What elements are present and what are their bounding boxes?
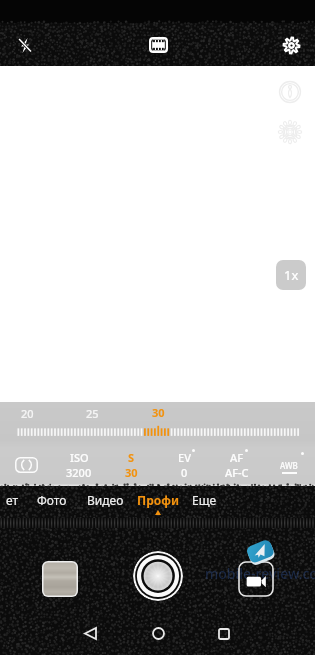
staticText: Видео: [87, 492, 124, 508]
staticText: 3200: [66, 465, 92, 480]
button[interactable]: Home: [125, 612, 191, 655]
staticText: Еще: [192, 492, 217, 508]
button[interactable]: AF: [211, 444, 263, 486]
button[interactable]: Видео: [80, 486, 130, 517]
button[interactable]: Профи: [134, 486, 183, 517]
staticText: ISO: [70, 450, 89, 465]
staticText: Фото: [37, 492, 67, 508]
button[interactable]: ет: [0, 486, 24, 517]
staticText: Профи: [137, 492, 180, 508]
button[interactable]: Фото: [30, 486, 74, 517]
button[interactable]: Metering: [0, 444, 52, 486]
staticText: S: [128, 450, 135, 465]
staticText: 25: [86, 406, 99, 421]
button[interactable]: Switch to video: [238, 561, 274, 597]
staticText: AF: [230, 450, 244, 465]
button[interactable]: Еще: [186, 486, 223, 517]
staticText: EV: [178, 450, 191, 465]
staticText: 20: [21, 406, 34, 421]
button[interactable]: Gallery: [42, 561, 78, 597]
staticText: 30: [152, 405, 165, 420]
button[interactable]: Night mode: [277, 79, 303, 105]
button[interactable]: Shutter: [133, 551, 183, 601]
button[interactable]: Flash off: [8, 29, 40, 61]
staticText: AF-C: [225, 465, 249, 480]
staticText: mobile-review.com: [205, 564, 315, 583]
button[interactable]: Recents: [191, 612, 257, 655]
button[interactable]: Settings: [275, 29, 307, 61]
button[interactable]: 1x: [276, 260, 306, 290]
button[interactable]: Back: [57, 612, 123, 655]
staticText: 1x: [284, 266, 299, 284]
staticText: ет: [6, 492, 19, 508]
button[interactable]: ISO: [53, 444, 105, 486]
button[interactable]: Brightness: [277, 119, 303, 145]
staticText: 0: [181, 465, 188, 480]
button[interactable]: EV: [158, 444, 210, 486]
staticText: 30: [125, 465, 138, 480]
staticText: AWB: [280, 460, 298, 471]
button[interactable]: Filters: [141, 28, 175, 62]
button[interactable]: White balance: [263, 444, 315, 486]
button[interactable]: S: [105, 444, 157, 486]
